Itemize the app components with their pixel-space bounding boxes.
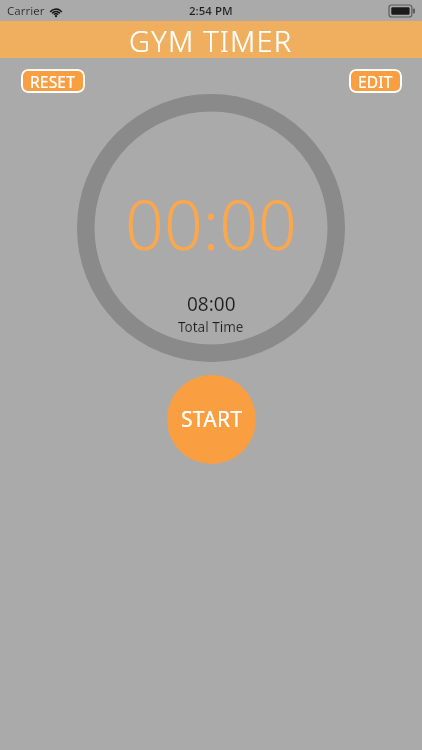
staticText: GYM TIMER xyxy=(129,21,293,58)
other: Wi-Fi xyxy=(49,6,63,17)
button[interactable]: EDIT xyxy=(349,69,402,93)
button[interactable]: RESET xyxy=(21,69,85,93)
staticText: EDIT xyxy=(358,71,393,92)
staticText: 08:00 xyxy=(187,291,236,317)
staticText: 00:00 xyxy=(125,177,297,270)
staticText: START xyxy=(181,405,243,434)
staticText: 2:54 PM xyxy=(189,3,233,19)
staticText: RESET xyxy=(30,71,76,92)
staticText: Carrier xyxy=(7,3,45,19)
other: Battery xyxy=(389,5,415,17)
button[interactable]: START xyxy=(167,375,256,464)
staticText: Total Time xyxy=(178,318,244,336)
